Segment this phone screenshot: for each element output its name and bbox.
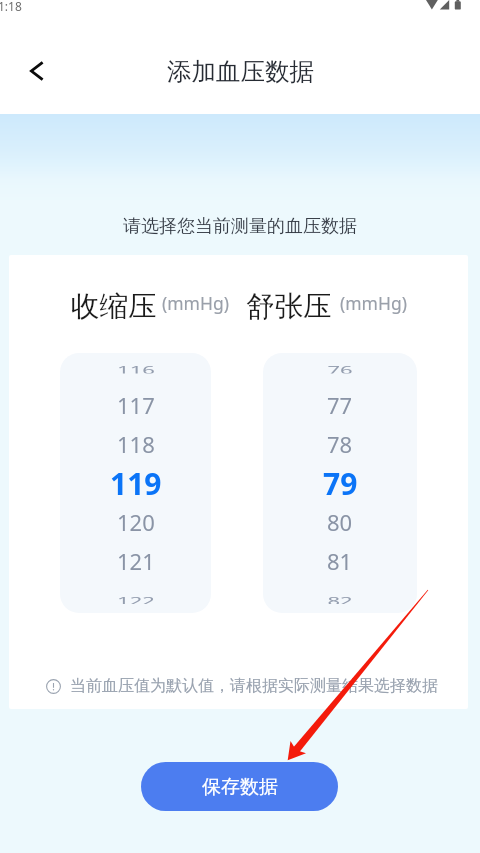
staticText: 121 xyxy=(117,546,155,576)
staticText: 119 xyxy=(110,463,162,502)
staticText: 120 xyxy=(117,507,155,537)
staticText: 81 xyxy=(327,546,353,576)
staticText: 80 xyxy=(327,507,353,537)
button[interactable]: 保存数据 xyxy=(141,762,338,811)
button[interactable]: Back xyxy=(15,49,59,93)
staticText: 78 xyxy=(327,429,353,459)
staticText: 118 xyxy=(117,429,155,459)
staticText: 当前血压值为默认值，请根据实际测量结果选择数据 xyxy=(70,676,438,696)
staticText: 请选择您当前测量的血压数据 xyxy=(0,215,480,238)
staticText: 79 xyxy=(323,463,358,502)
staticText: 保存数据 xyxy=(202,775,278,799)
staticText: (mmHg) xyxy=(162,291,229,315)
staticText: (mmHg) xyxy=(340,291,407,315)
staticText: 舒张压 xyxy=(246,289,332,325)
staticText: 77 xyxy=(327,390,353,420)
staticText: 116 xyxy=(117,363,155,373)
staticText: 添加血压数据 xyxy=(167,56,314,87)
staticText: 1:18 xyxy=(0,0,22,14)
staticText: 117 xyxy=(117,390,155,420)
button[interactable]: 116 xyxy=(60,353,211,613)
staticText: 82 xyxy=(327,594,353,604)
staticText: 收缩压 xyxy=(71,289,157,325)
staticText: 76 xyxy=(327,363,353,373)
button[interactable]: 76 xyxy=(263,353,417,613)
staticText: 122 xyxy=(117,594,155,604)
